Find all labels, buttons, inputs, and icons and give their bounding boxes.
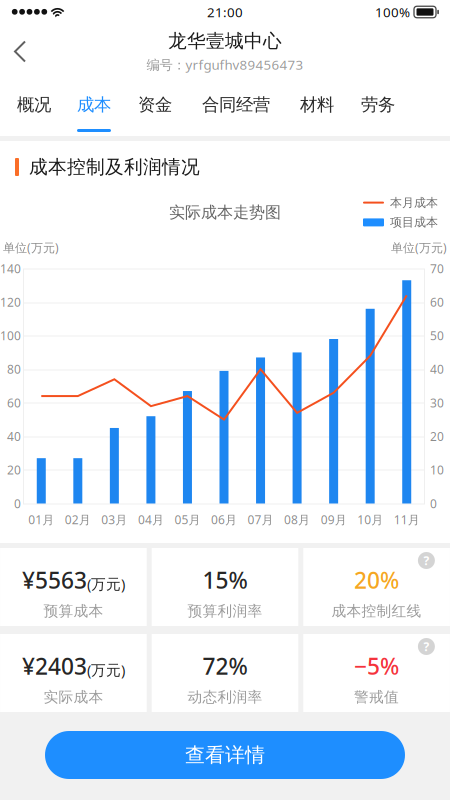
staticText: 60 xyxy=(430,294,444,310)
staticText: 20 xyxy=(7,462,21,478)
staticText: 70 xyxy=(430,260,444,276)
staticText: 100 xyxy=(0,328,21,344)
staticText: 20% xyxy=(354,565,399,595)
staticText: 成本控制红线 xyxy=(332,602,422,620)
staticText: 06月 xyxy=(211,511,237,527)
staticText: 实际成本走势图 xyxy=(169,203,281,222)
staticText: 概况 xyxy=(17,94,51,115)
staticText: ? xyxy=(423,552,429,568)
button[interactable]: 劳务 xyxy=(348,79,408,136)
staticText: 资金 xyxy=(138,94,172,115)
button[interactable]: Help xyxy=(418,548,450,569)
staticText: 07月 xyxy=(247,511,273,527)
staticText: 警戒值 xyxy=(354,688,399,706)
staticText: 15% xyxy=(202,565,247,595)
staticText: 40 xyxy=(7,428,21,444)
staticText: 材料 xyxy=(300,94,334,115)
staticText: 04月 xyxy=(138,511,164,527)
staticText: 21:00 xyxy=(207,3,243,21)
staticText: 02月 xyxy=(65,511,91,527)
staticText: 0 xyxy=(430,495,437,511)
staticText: 50 xyxy=(430,328,444,344)
staticText: (万元) xyxy=(87,574,125,594)
staticText: 08月 xyxy=(284,511,310,527)
staticText: 20 xyxy=(430,428,444,444)
staticText: 查看详情 xyxy=(185,743,265,767)
staticText: 合同经营 xyxy=(202,94,270,115)
staticText: 03月 xyxy=(101,511,127,527)
button[interactable]: 查看详情 xyxy=(45,731,405,779)
staticText: 11月 xyxy=(394,511,420,527)
staticText: 120 xyxy=(0,294,21,310)
staticText: 劳务 xyxy=(361,94,395,115)
staticText: ? xyxy=(423,638,429,654)
staticText: 0 xyxy=(14,495,21,511)
staticText: 单位(万元) xyxy=(3,239,59,255)
button[interactable]: 概况 xyxy=(4,79,64,136)
staticText: 编号：yrfgufhv89456473 xyxy=(146,56,303,73)
staticText: 01月 xyxy=(28,511,54,527)
staticText: 预算成本 xyxy=(43,602,103,620)
staticText: ¥5563 xyxy=(22,565,87,595)
staticText: 80 xyxy=(7,361,21,377)
staticText: 100% xyxy=(375,3,410,21)
staticText: −5% xyxy=(354,651,399,681)
staticText: 30 xyxy=(430,395,444,411)
staticText: 05月 xyxy=(174,511,200,527)
staticText: 单位(万元) xyxy=(391,239,447,255)
staticText: ¥2403 xyxy=(22,651,87,681)
staticText: 72% xyxy=(202,651,247,681)
button[interactable]: 资金 xyxy=(124,79,186,136)
staticText: 40 xyxy=(430,361,444,377)
staticText: 实际成本 xyxy=(43,688,103,706)
staticText: 10月 xyxy=(357,511,383,527)
button[interactable]: 成本 xyxy=(64,79,124,136)
staticText: 成本 xyxy=(77,94,111,115)
button[interactable]: 合同经营 xyxy=(186,79,286,136)
staticText: 140 xyxy=(0,260,21,276)
staticText: 动态利润率 xyxy=(187,688,262,706)
staticText: 预算利润率 xyxy=(187,602,262,620)
staticText: 本月成本 xyxy=(390,195,438,210)
button[interactable]: Back xyxy=(0,24,40,79)
staticText: 成本控制及利润情况 xyxy=(29,155,200,178)
staticText: 龙华壹城中心 xyxy=(168,30,282,53)
button[interactable]: Help xyxy=(418,634,450,655)
staticText: 09月 xyxy=(321,511,347,527)
staticText: 项目成本 xyxy=(390,215,438,230)
button[interactable]: 材料 xyxy=(286,79,348,136)
staticText: 60 xyxy=(7,395,21,411)
staticText: (万元) xyxy=(87,660,125,680)
staticText: 10 xyxy=(430,462,444,478)
